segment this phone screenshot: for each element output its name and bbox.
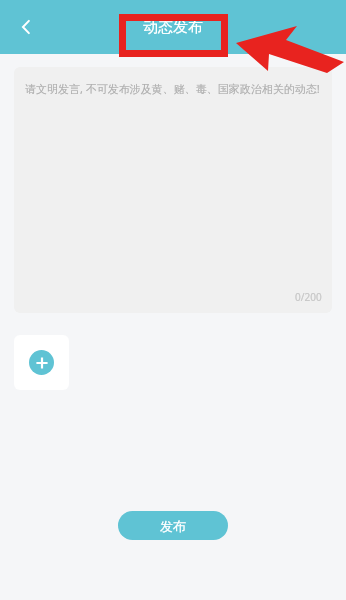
staticText: 0/200 [295,290,322,304]
staticText: 发布 [160,518,186,534]
button[interactable]: Add image [14,335,69,390]
button[interactable]: 请文明发言, 不可发布涉及黄、赌、毒、国家政治相关的动态! [14,67,332,313]
staticText: 动态发布 [143,18,203,37]
button[interactable]: Back [6,7,46,47]
staticText: 请文明发言, 不可发布涉及黄、赌、毒、国家政治相关的动态! [25,81,320,96]
button[interactable]: 发布 [118,511,228,540]
